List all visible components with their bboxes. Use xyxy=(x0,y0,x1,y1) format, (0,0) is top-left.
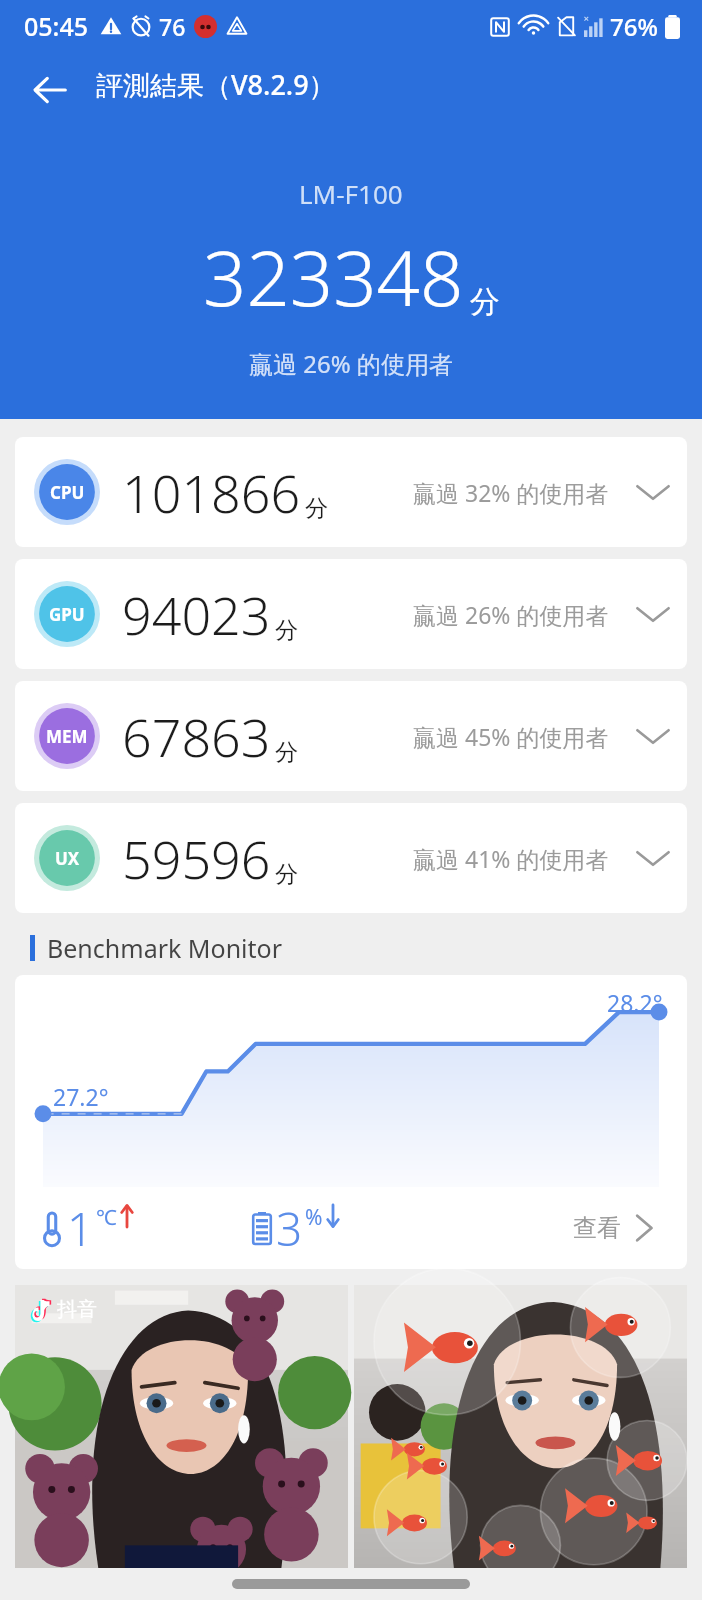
button[interactable]: Advertisement 2 xyxy=(354,1285,687,1568)
button[interactable]: Back xyxy=(18,58,82,122)
button[interactable]: UX xyxy=(15,803,687,913)
staticText: 27.2° xyxy=(53,1081,109,1112)
staticText: 94023 xyxy=(122,579,271,650)
staticText: 76% xyxy=(610,10,658,43)
staticText: 分 xyxy=(470,283,500,321)
button[interactable]: Expand MEM details xyxy=(631,714,675,758)
staticText: MEM xyxy=(46,725,88,748)
button[interactable]: Advertisement 1 xyxy=(15,1285,348,1568)
staticText: 1 xyxy=(67,1197,94,1260)
staticText: 分 xyxy=(275,738,298,767)
staticText: 抖音 xyxy=(57,1297,97,1322)
staticText: GPU xyxy=(49,603,85,626)
staticText: 贏過 41% 的使用者 xyxy=(413,843,609,874)
staticText: CPU xyxy=(50,481,85,504)
staticText: 評測結果（V8.2.9） xyxy=(96,66,336,103)
staticText: 28.2° xyxy=(607,987,663,1018)
staticText: 101866 xyxy=(122,457,301,528)
staticText: 贏過 45% 的使用者 xyxy=(413,721,609,752)
staticText: UX xyxy=(55,847,80,870)
button[interactable]: Expand UX details xyxy=(631,836,675,880)
staticText: 59596 xyxy=(122,823,271,894)
staticText: 贏過 32% 的使用者 xyxy=(413,477,609,508)
staticText: 贏過 26% 的使用者 xyxy=(413,599,609,630)
staticText: 3 xyxy=(276,1197,303,1260)
staticText: 分 xyxy=(275,616,298,645)
staticText: ℃ xyxy=(96,1203,117,1232)
button[interactable]: Expand GPU details xyxy=(631,592,675,636)
button[interactable]: 查看 xyxy=(573,1211,661,1245)
staticText: Benchmark Monitor xyxy=(47,931,283,965)
button[interactable]: CPU xyxy=(15,437,687,547)
button[interactable]: GPU xyxy=(15,559,687,669)
staticText: 贏過 26% 的使用者 xyxy=(249,347,453,380)
staticText: LM-F100 xyxy=(299,176,403,211)
staticText: 76 xyxy=(159,11,186,42)
button[interactable]: MEM xyxy=(15,681,687,791)
button[interactable]: 27.2° xyxy=(15,975,687,1269)
staticText: 05:45 xyxy=(24,9,89,43)
staticText: 67863 xyxy=(122,701,271,772)
staticText: 查看 xyxy=(573,1213,621,1243)
staticText: 323348 xyxy=(203,225,464,329)
staticText: 分 xyxy=(275,860,298,889)
staticText: 分 xyxy=(305,494,328,523)
button[interactable]: Expand CPU details xyxy=(631,470,675,514)
staticText: % xyxy=(305,1203,323,1232)
